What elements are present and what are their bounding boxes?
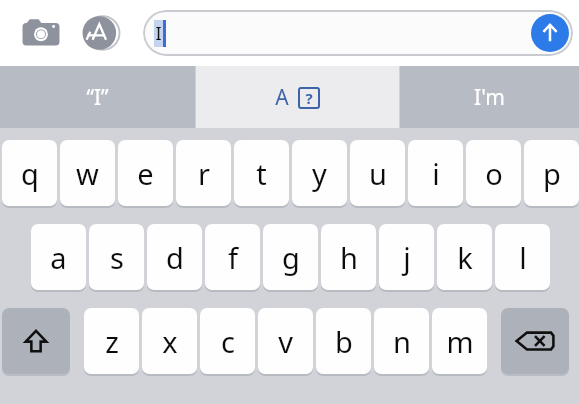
button[interactable]: t bbox=[234, 140, 289, 206]
staticText: a bbox=[50, 238, 67, 277]
button[interactable]: y bbox=[292, 140, 347, 206]
staticText: d bbox=[166, 238, 184, 277]
button[interactable]: s bbox=[89, 224, 144, 290]
staticText: t bbox=[256, 154, 267, 193]
button[interactable]: d bbox=[147, 224, 202, 290]
staticText: s bbox=[110, 238, 124, 277]
staticText: l bbox=[519, 238, 527, 277]
button[interactable]: e bbox=[118, 140, 173, 206]
staticText: e bbox=[137, 154, 154, 193]
staticText: g bbox=[282, 238, 300, 277]
button[interactable]: I'm bbox=[400, 66, 579, 128]
button[interactable]: z bbox=[84, 308, 139, 374]
button[interactable]: Camera bbox=[18, 10, 64, 56]
staticText: w bbox=[76, 154, 99, 193]
button[interactable]: o bbox=[466, 140, 521, 206]
staticText: z bbox=[105, 322, 119, 361]
staticText: ? bbox=[305, 88, 313, 108]
button[interactable]: u bbox=[350, 140, 405, 206]
button[interactable]: j bbox=[379, 224, 434, 290]
staticText: n bbox=[393, 322, 411, 361]
button[interactable]: Send bbox=[531, 14, 569, 52]
staticText: “I” bbox=[86, 83, 109, 112]
staticText: j bbox=[403, 238, 411, 277]
staticText: o bbox=[485, 154, 503, 193]
staticText: I bbox=[155, 21, 162, 46]
staticText: r bbox=[198, 154, 210, 193]
button[interactable]: a bbox=[31, 224, 86, 290]
button[interactable]: Backspace bbox=[501, 308, 569, 374]
button[interactable]: x bbox=[142, 308, 197, 374]
button[interactable]: i bbox=[408, 140, 463, 206]
button[interactable]: n bbox=[374, 308, 429, 374]
button[interactable]: f bbox=[205, 224, 260, 290]
button[interactable]: g bbox=[263, 224, 318, 290]
button[interactable]: h bbox=[321, 224, 376, 290]
staticText: y bbox=[312, 154, 327, 193]
staticText: c bbox=[221, 322, 235, 361]
button[interactable]: q bbox=[2, 140, 57, 206]
button[interactable]: A bbox=[196, 66, 399, 128]
staticText: I'm bbox=[474, 83, 505, 112]
button[interactable]: I bbox=[143, 10, 573, 56]
button[interactable]: l bbox=[495, 224, 550, 290]
staticText: x bbox=[162, 322, 178, 361]
staticText: h bbox=[340, 238, 358, 277]
button[interactable]: b bbox=[316, 308, 371, 374]
staticText: m bbox=[446, 322, 474, 361]
button[interactable]: Shift bbox=[2, 308, 70, 374]
button[interactable]: “I” bbox=[0, 66, 195, 128]
staticText: A bbox=[275, 83, 289, 112]
staticText: u bbox=[369, 154, 387, 193]
button[interactable]: p bbox=[524, 140, 579, 206]
button[interactable]: r bbox=[176, 140, 231, 206]
button[interactable]: k bbox=[437, 224, 492, 290]
button[interactable]: c bbox=[200, 308, 255, 374]
staticText: p bbox=[543, 154, 561, 193]
staticText: q bbox=[21, 154, 39, 193]
staticText: f bbox=[228, 238, 238, 277]
button[interactable]: m bbox=[432, 308, 487, 374]
staticText: v bbox=[278, 322, 293, 361]
staticText: b bbox=[335, 322, 353, 361]
button[interactable]: v bbox=[258, 308, 313, 374]
button[interactable]: App Store bbox=[78, 10, 124, 56]
staticText: k bbox=[457, 238, 473, 277]
staticText: i bbox=[432, 154, 440, 193]
button[interactable]: w bbox=[60, 140, 115, 206]
